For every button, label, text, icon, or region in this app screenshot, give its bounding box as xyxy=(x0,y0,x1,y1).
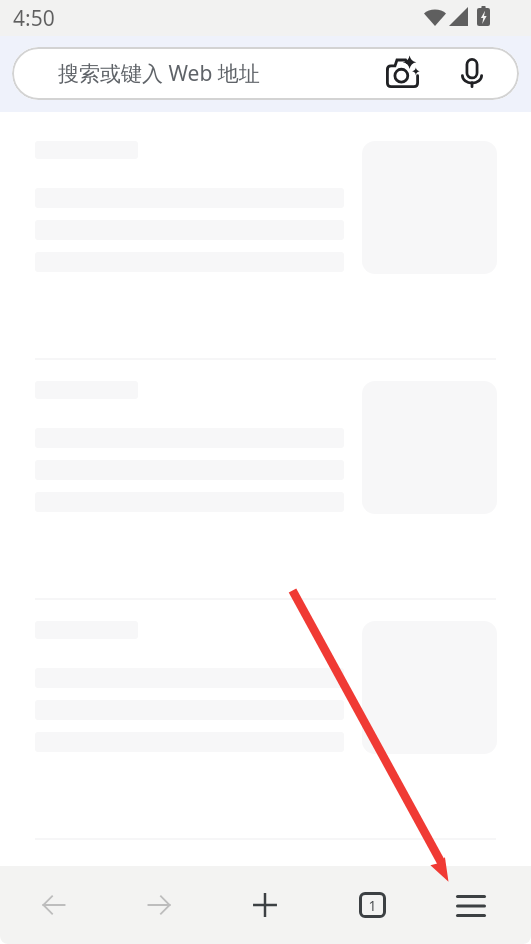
button[interactable]: New tab xyxy=(239,879,291,931)
button[interactable]: Voice search xyxy=(451,52,493,94)
button[interactable]: 搜索或键入 Web 地址 xyxy=(12,47,519,100)
button[interactable]: Back xyxy=(28,879,80,931)
button[interactable]: Search with camera xyxy=(381,51,423,93)
staticText: 1 xyxy=(368,896,377,915)
button[interactable]: Forward xyxy=(133,879,185,931)
staticText: 4:50 xyxy=(13,4,55,33)
button[interactable]: Tabs xyxy=(346,879,398,931)
staticText: 搜索或键入 Web 地址 xyxy=(58,59,260,88)
button[interactable]: Menu xyxy=(445,880,497,932)
